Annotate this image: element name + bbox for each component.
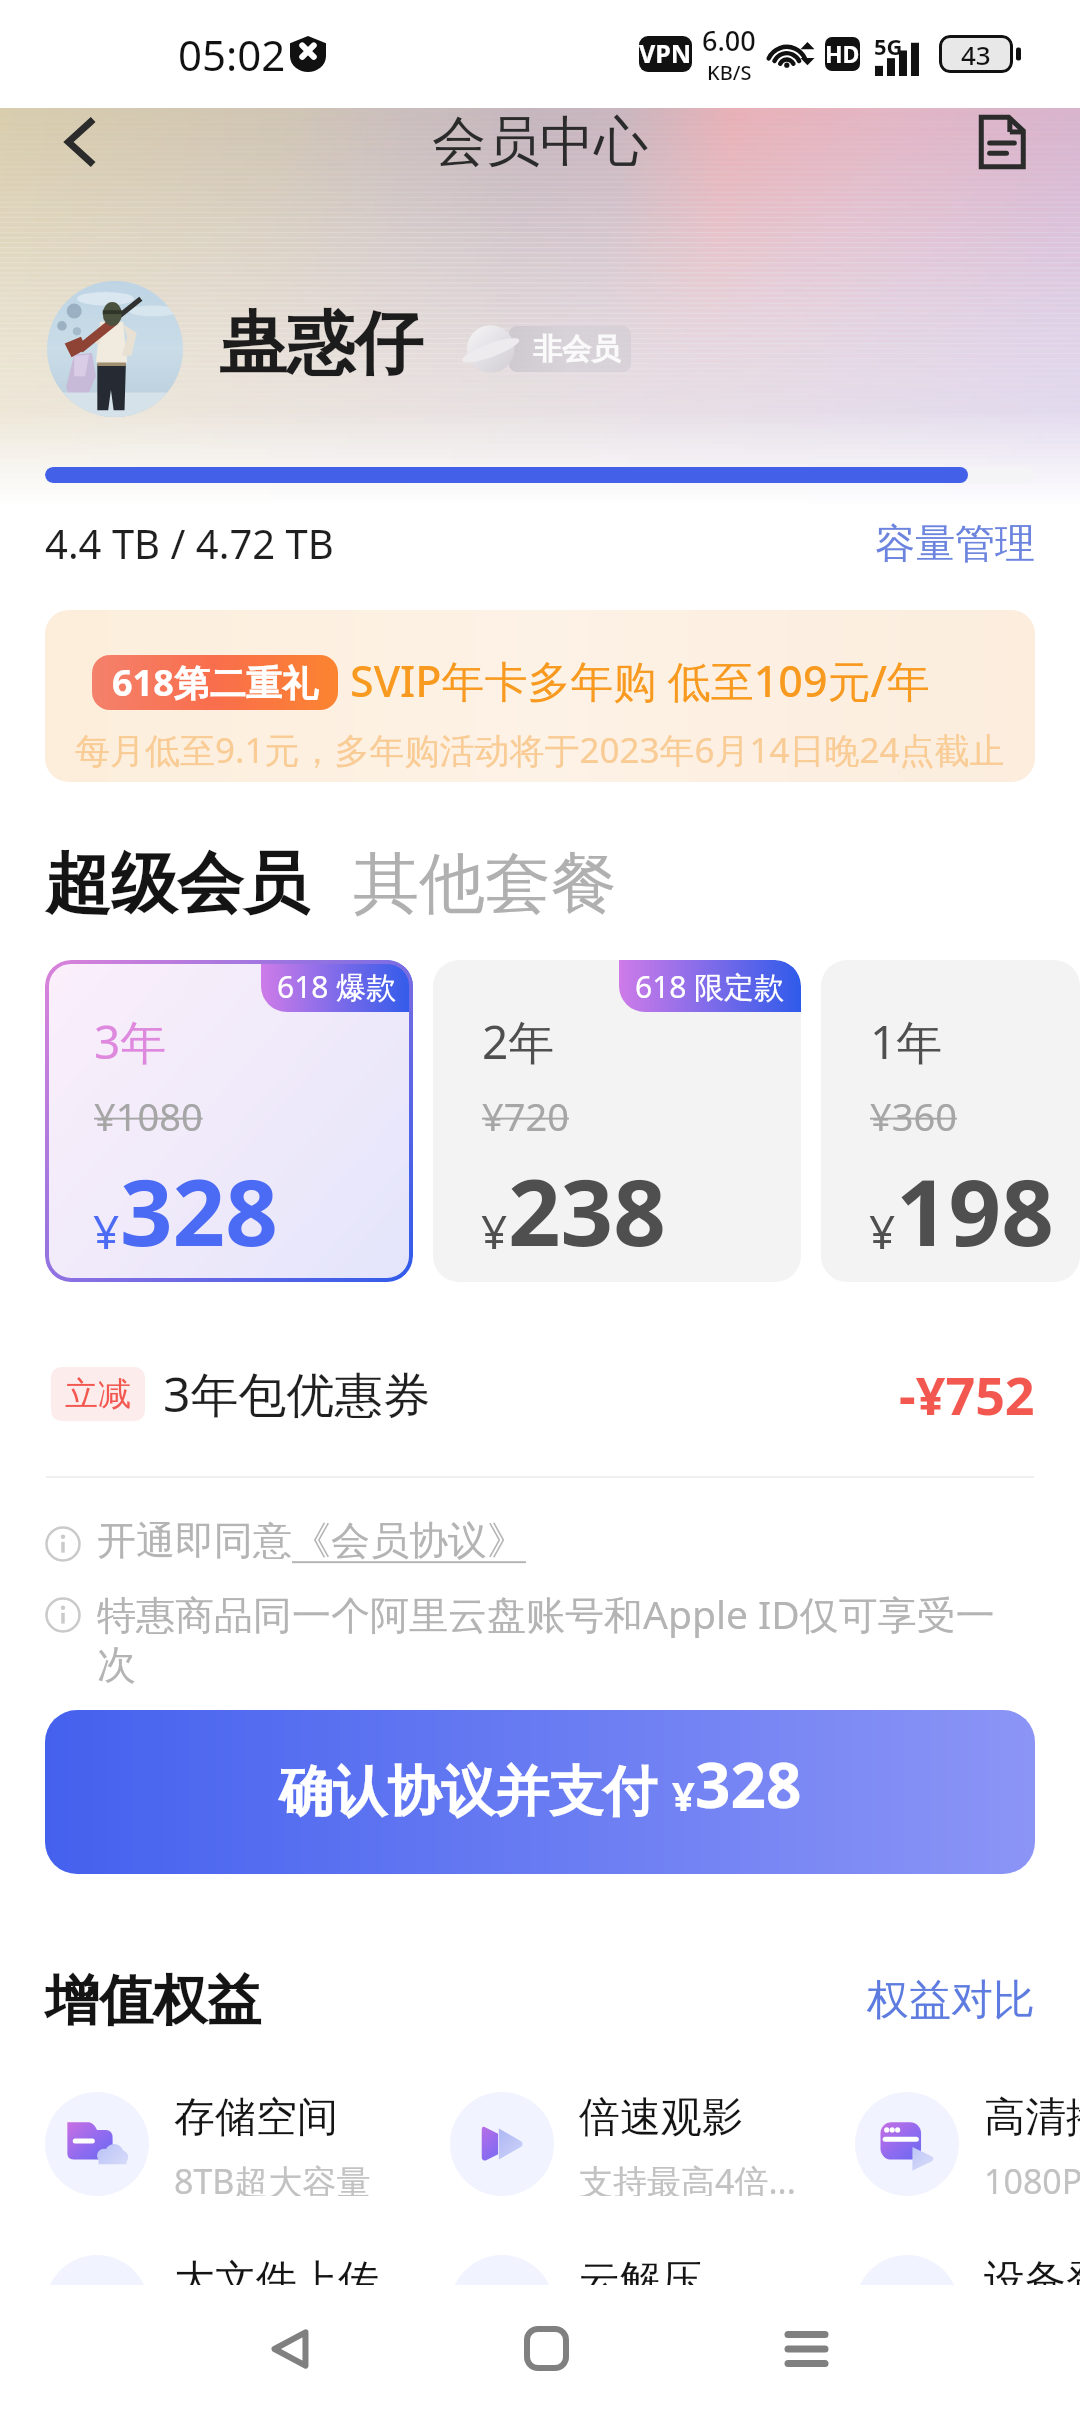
staticText: 每月低至9.1元，多年购活动将于2023年6月14日晚24点截止: [75, 726, 1005, 774]
staticText: 会员中心: [432, 108, 648, 176]
staticText: SVIP年卡多年购 低至109元/年: [350, 651, 931, 710]
staticText: VPN: [639, 36, 692, 70]
staticText: 2年: [482, 1010, 555, 1073]
button[interactable]: Order records: [956, 96, 1048, 188]
button[interactable]: 设备登录: [855, 2255, 1080, 2359]
staticText: HD: [825, 38, 860, 69]
staticText: 存储空间: [174, 2092, 338, 2144]
button[interactable]: 高清播放: [855, 2092, 1080, 2196]
button[interactable]: 大文件上传: [45, 2255, 435, 2359]
staticText: 增值权益: [45, 1967, 261, 2035]
button[interactable]: 其他套餐: [353, 836, 617, 931]
button[interactable]: 超级会员: [45, 836, 309, 931]
staticText: 云解压: [579, 2255, 702, 2307]
staticText: 5G: [874, 31, 903, 61]
staticText: ¥: [869, 1200, 896, 1263]
staticText: 1080P视频: [984, 2158, 1080, 2196]
staticText: 3年包优惠券: [163, 1361, 431, 1427]
button[interactable]: 《会员协议》: [292, 1516, 526, 1565]
staticText: 3年: [94, 1010, 167, 1073]
button[interactable]: 权益对比: [847, 1964, 1035, 2037]
button[interactable]: Recent apps: [722, 2285, 890, 2412]
button[interactable]: 618 爆款: [45, 960, 413, 1282]
staticText: 超级会员: [45, 842, 309, 925]
button[interactable]: 1年: [821, 960, 1080, 1282]
button[interactable]: 618第二重礼: [45, 610, 1035, 782]
button[interactable]: 云解压: [450, 2255, 840, 2359]
staticText: 328: [695, 1742, 802, 1826]
staticText: 确认协议并支付: [279, 1752, 672, 1826]
staticText: 蛊惑仔: [219, 302, 423, 388]
staticText: 支持最高4倍...: [579, 2158, 796, 2196]
staticText: 4.4 TB / 4.72 TB: [45, 516, 334, 570]
staticText: 设备登录: [984, 2255, 1080, 2307]
staticText: ¥: [672, 1768, 695, 1822]
button[interactable]: 倍速观影: [450, 2092, 840, 2196]
button[interactable]: 618 限定款: [433, 960, 801, 1282]
staticText: 大文件上传: [174, 2255, 379, 2307]
staticText: 特惠商品同一个阿里云盘账号和Apple ID仅可享受一次: [97, 1587, 1032, 1690]
staticText: 倍速观影: [579, 2092, 743, 2144]
button[interactable]: 确认协议并支付: [45, 1710, 1035, 1874]
staticText: KB/S: [707, 59, 752, 86]
staticText: 618 爆款: [277, 966, 397, 1007]
button[interactable]: 立减: [0, 1356, 1080, 1432]
staticText: 238: [508, 1148, 666, 1273]
staticText: 1年: [870, 1010, 943, 1073]
staticText: 权益对比: [867, 1974, 1035, 2027]
staticText: 328: [120, 1148, 278, 1273]
staticText: 单个文件10...: [174, 2321, 377, 2359]
staticText: ¥1080: [94, 1090, 203, 1142]
staticText: ¥: [93, 1200, 120, 1263]
button[interactable]: 容量管理: [855, 508, 1035, 578]
staticText: 容量管理: [875, 518, 1035, 568]
staticText: 05:02: [178, 26, 286, 83]
staticText: ¥: [481, 1200, 508, 1263]
staticText: 其他套餐: [353, 842, 617, 925]
staticText: 6.00: [702, 22, 756, 59]
button[interactable]: 存储空间: [45, 2092, 435, 2196]
staticText: ¥720: [482, 1090, 569, 1142]
button[interactable]: Back: [206, 2285, 374, 2412]
staticText: 198: [896, 1148, 1054, 1273]
staticText: 立减: [65, 1373, 131, 1415]
button[interactable]: Back: [34, 96, 126, 188]
staticText: 非会员: [533, 331, 620, 368]
staticText: 618第二重礼: [112, 658, 318, 707]
staticText: 618 限定款: [635, 966, 785, 1007]
staticText: 43: [961, 37, 991, 72]
staticText: 8TB超大容量: [174, 2158, 371, 2196]
button[interactable]: Home: [462, 2285, 630, 2412]
staticText: 开通即同意: [97, 1516, 292, 1565]
staticText: ¥360: [870, 1090, 957, 1142]
staticText: -¥752: [899, 1359, 1035, 1430]
staticText: 高清播放: [984, 2092, 1080, 2144]
staticText: 《会员协议》: [292, 1516, 526, 1565]
